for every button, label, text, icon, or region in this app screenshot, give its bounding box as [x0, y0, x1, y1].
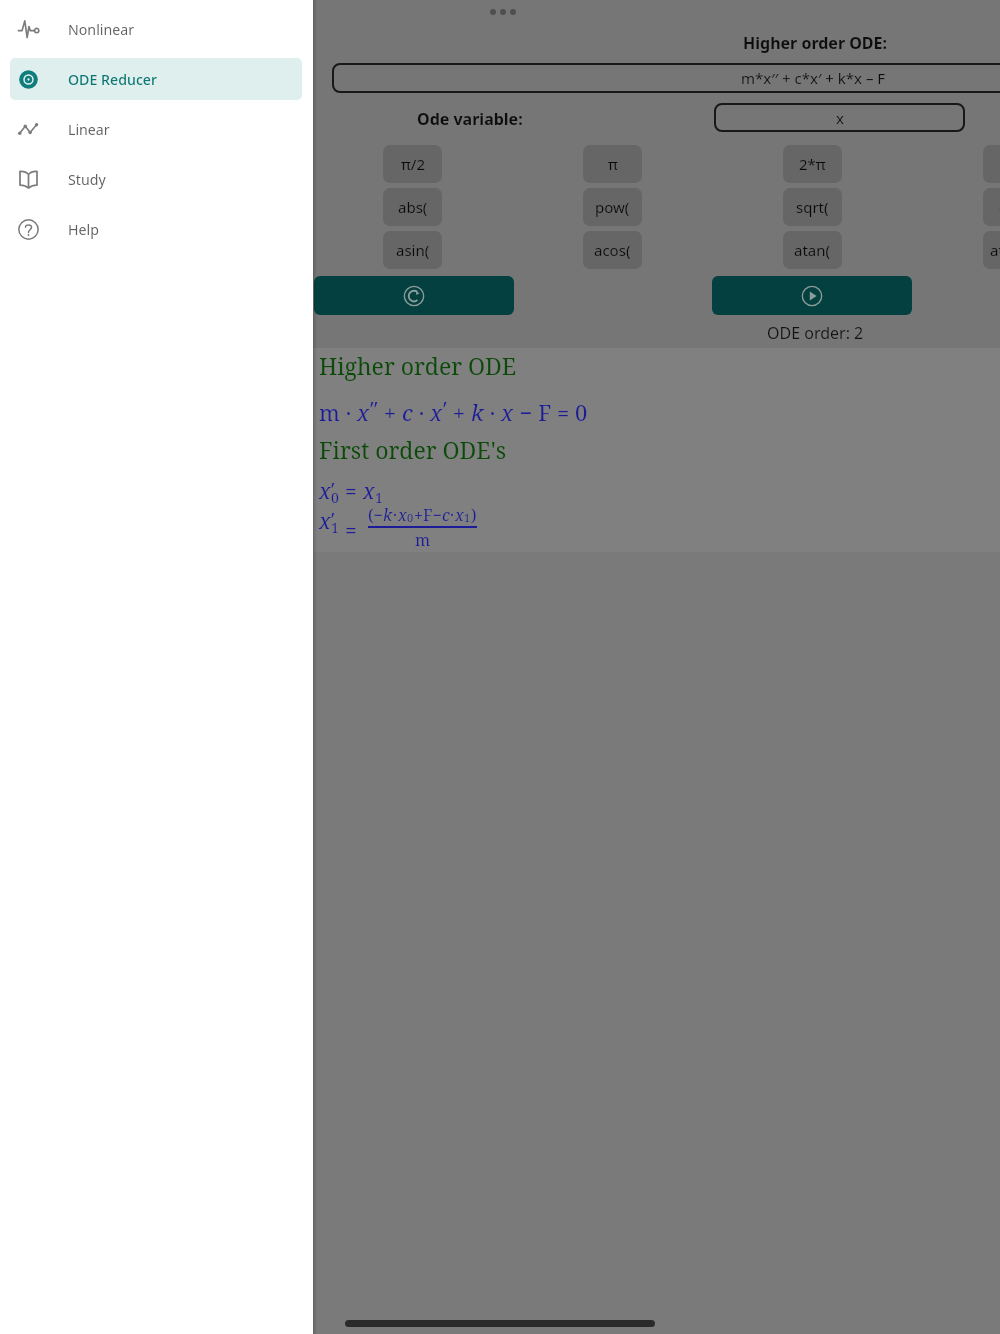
- staticText: ′: [443, 396, 447, 425]
- staticText: First order ODE's: [319, 434, 507, 465]
- staticText: π: [608, 154, 618, 174]
- staticText: atan2(: [990, 240, 1000, 260]
- staticText: x: [319, 507, 331, 536]
- staticText: x: [398, 504, 407, 526]
- staticText: abs(: [398, 197, 428, 217]
- staticText: Higher order ODE: [319, 350, 517, 381]
- button[interactable]: acos(: [583, 231, 642, 269]
- staticText: Linear: [68, 120, 110, 139]
- staticText: +: [378, 397, 402, 427]
- staticText: ·: [450, 504, 455, 526]
- staticText: ·: [340, 397, 357, 427]
- staticText: c: [402, 397, 413, 427]
- staticText: m*x′′ + c*x′ + k*x – F: [741, 68, 886, 88]
- staticText: ·: [393, 504, 398, 526]
- button[interactable]: abs(: [383, 188, 442, 226]
- staticText: Higher order ODE:: [743, 32, 888, 54]
- button[interactable]: x: [714, 103, 965, 132]
- staticText: sqrt(: [796, 197, 829, 217]
- staticText: x: [363, 477, 375, 506]
- button[interactable]: atan(: [783, 231, 842, 269]
- button[interactable]: m*x′′ + c*x′ + k*x – F: [332, 63, 1000, 93]
- staticText: =: [345, 516, 357, 545]
- staticText: 0: [331, 488, 339, 507]
- staticText: c: [442, 504, 450, 526]
- button[interactable]: asin(: [383, 231, 442, 269]
- staticText: ″: [370, 396, 378, 425]
- button[interactable]: π/2: [383, 145, 442, 183]
- button[interactable]: Study: [10, 158, 302, 200]
- staticText: Nonlinear: [68, 20, 135, 39]
- button[interactable]: π: [583, 145, 642, 183]
- button[interactable]: pow(: [583, 188, 642, 226]
- staticText: asin(: [396, 240, 430, 260]
- staticText: +: [447, 397, 471, 427]
- staticText: pow(: [595, 197, 630, 217]
- staticText: 1: [375, 488, 383, 507]
- staticText: 2*π: [799, 154, 826, 174]
- staticText: 0: [407, 510, 414, 525]
- staticText: k: [471, 397, 484, 427]
- staticText: ODE order: 2: [767, 322, 864, 344]
- staticText: =: [345, 477, 357, 506]
- staticText: x: [357, 397, 370, 427]
- button[interactable]: Nonlinear: [10, 8, 302, 50]
- staticText: (−: [368, 504, 383, 526]
- staticText: acos(: [594, 240, 631, 260]
- staticText: x: [455, 504, 464, 526]
- staticText: ′: [331, 476, 335, 503]
- staticText: k: [383, 504, 393, 526]
- button[interactable]: Run: [712, 276, 912, 315]
- staticText: ′: [331, 506, 335, 533]
- staticText: +F−: [414, 504, 442, 526]
- staticText: x: [319, 477, 331, 506]
- staticText: x: [430, 397, 443, 427]
- staticText: ·: [484, 397, 501, 427]
- button[interactable]: sqrt(: [783, 188, 842, 226]
- button[interactable]: Help: [10, 208, 302, 250]
- button[interactable]: Linear: [10, 108, 302, 150]
- button[interactable]: Reset: [314, 276, 514, 315]
- staticText: atan(: [794, 240, 831, 260]
- staticText: Ode variable:: [417, 108, 523, 130]
- staticText: m: [415, 529, 431, 551]
- button[interactable]: atan2(: [983, 231, 1000, 269]
- staticText: π/2: [401, 154, 425, 174]
- staticText: Study: [68, 170, 106, 189]
- staticText: 1: [464, 510, 471, 525]
- staticText: − F = 0: [514, 397, 588, 427]
- staticText: ODE Reducer: [68, 70, 157, 89]
- staticText: ): [471, 504, 477, 526]
- staticText: ·: [413, 397, 430, 427]
- staticText: m: [319, 397, 340, 427]
- staticText: Help: [68, 220, 99, 239]
- staticText: x: [836, 108, 844, 128]
- button[interactable]: ODE Reducer: [10, 58, 302, 100]
- button[interactable]: 2*π: [783, 145, 842, 183]
- staticText: 1: [331, 518, 339, 537]
- staticText: x: [501, 397, 514, 427]
